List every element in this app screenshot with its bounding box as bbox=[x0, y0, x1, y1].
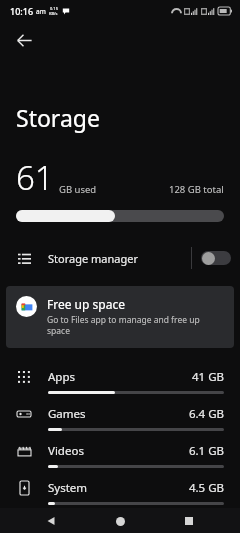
button[interactable]: Back bbox=[6, 22, 42, 58]
button[interactable]: Storage manager bbox=[0, 240, 240, 276]
staticText: 41 GB bbox=[192, 369, 224, 385]
staticText: am bbox=[36, 7, 46, 16]
button[interactable]: System bbox=[0, 473, 240, 510]
staticText: 128 GB total bbox=[169, 183, 224, 196]
button[interactable]: Apps bbox=[0, 362, 240, 399]
staticText: 4.5 GB bbox=[188, 480, 224, 496]
button[interactable]: Free up space bbox=[6, 286, 234, 348]
button[interactable]: Recents bbox=[178, 510, 200, 532]
staticText: Storage bbox=[16, 102, 100, 133]
staticText: Games bbox=[48, 406, 86, 422]
staticText: KB/s bbox=[49, 11, 58, 16]
button[interactable]: Storage manager toggle bbox=[201, 250, 231, 266]
staticText: System bbox=[48, 480, 88, 496]
staticText: Videos bbox=[48, 443, 84, 459]
button[interactable]: Games bbox=[0, 399, 240, 436]
staticText: Go to Files app to manage and free up sp… bbox=[47, 314, 222, 336]
staticText: 61 bbox=[16, 155, 54, 200]
staticText: 10:16 bbox=[10, 5, 34, 17]
button[interactable]: Videos bbox=[0, 436, 240, 473]
staticText: Apps bbox=[48, 369, 76, 385]
button[interactable]: Home bbox=[109, 510, 131, 532]
staticText: GB used bbox=[59, 183, 97, 196]
staticText: Storage manager bbox=[48, 251, 138, 266]
staticText: 6.1 GB bbox=[188, 443, 224, 459]
staticText: 0.15 bbox=[50, 6, 58, 11]
staticText: Free up space bbox=[47, 296, 125, 312]
staticText: 6.4 GB bbox=[188, 406, 224, 422]
button[interactable]: Back bbox=[40, 510, 62, 532]
